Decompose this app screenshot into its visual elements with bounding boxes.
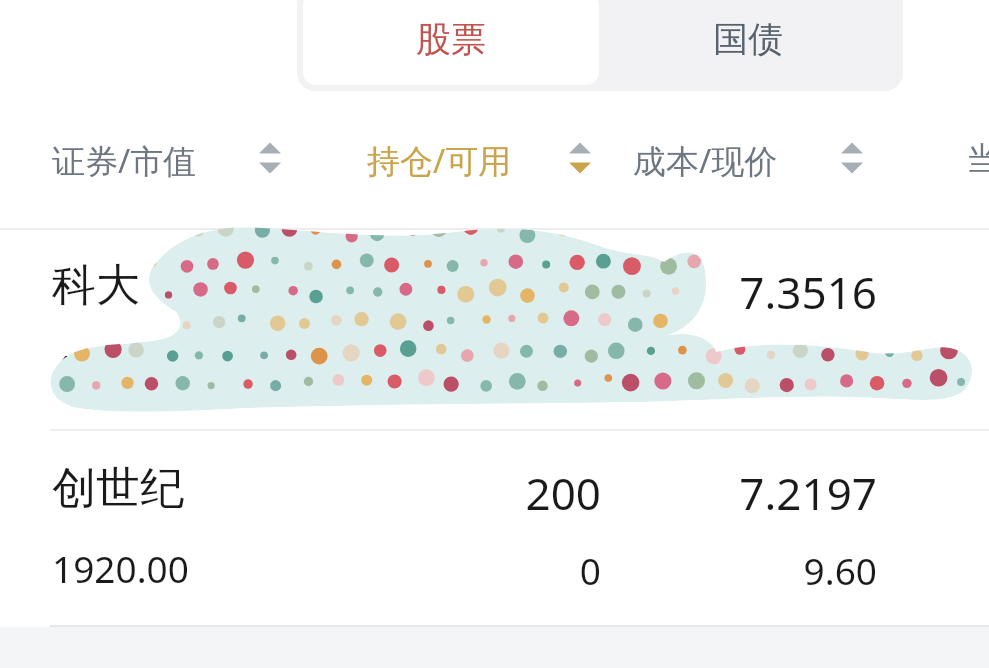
staticText: 科大 xyxy=(52,258,140,313)
button[interactable]: 成本/现价 xyxy=(633,120,870,195)
staticText: 创世纪 xyxy=(52,461,184,516)
staticText: 200 xyxy=(281,463,601,523)
staticText: 证券/市值 xyxy=(52,138,197,183)
button[interactable]: 股票 xyxy=(303,0,599,85)
staticText: 1920.00 xyxy=(52,543,189,593)
button[interactable]: 持仓/可用 xyxy=(367,120,598,195)
staticText: 成本/现价 xyxy=(633,138,778,183)
staticText: 国债 xyxy=(713,17,783,61)
staticText: 7.3516 xyxy=(557,262,877,322)
staticText: 9.60 xyxy=(557,545,877,595)
button[interactable]: 当日盈亏 xyxy=(966,120,989,195)
staticText: 0 xyxy=(281,545,601,595)
button[interactable]: 创世纪 xyxy=(0,431,989,627)
staticText: 当 xyxy=(966,138,989,180)
staticText: 49 xyxy=(52,342,95,392)
staticText: 股票 xyxy=(416,17,486,61)
staticText: 7.2197 xyxy=(557,463,877,523)
staticText: 持仓/可用 xyxy=(367,138,512,183)
button[interactable]: 国债 xyxy=(599,0,897,85)
button[interactable]: 科大 xyxy=(0,230,989,430)
button[interactable]: 证券/市值 xyxy=(52,120,288,195)
